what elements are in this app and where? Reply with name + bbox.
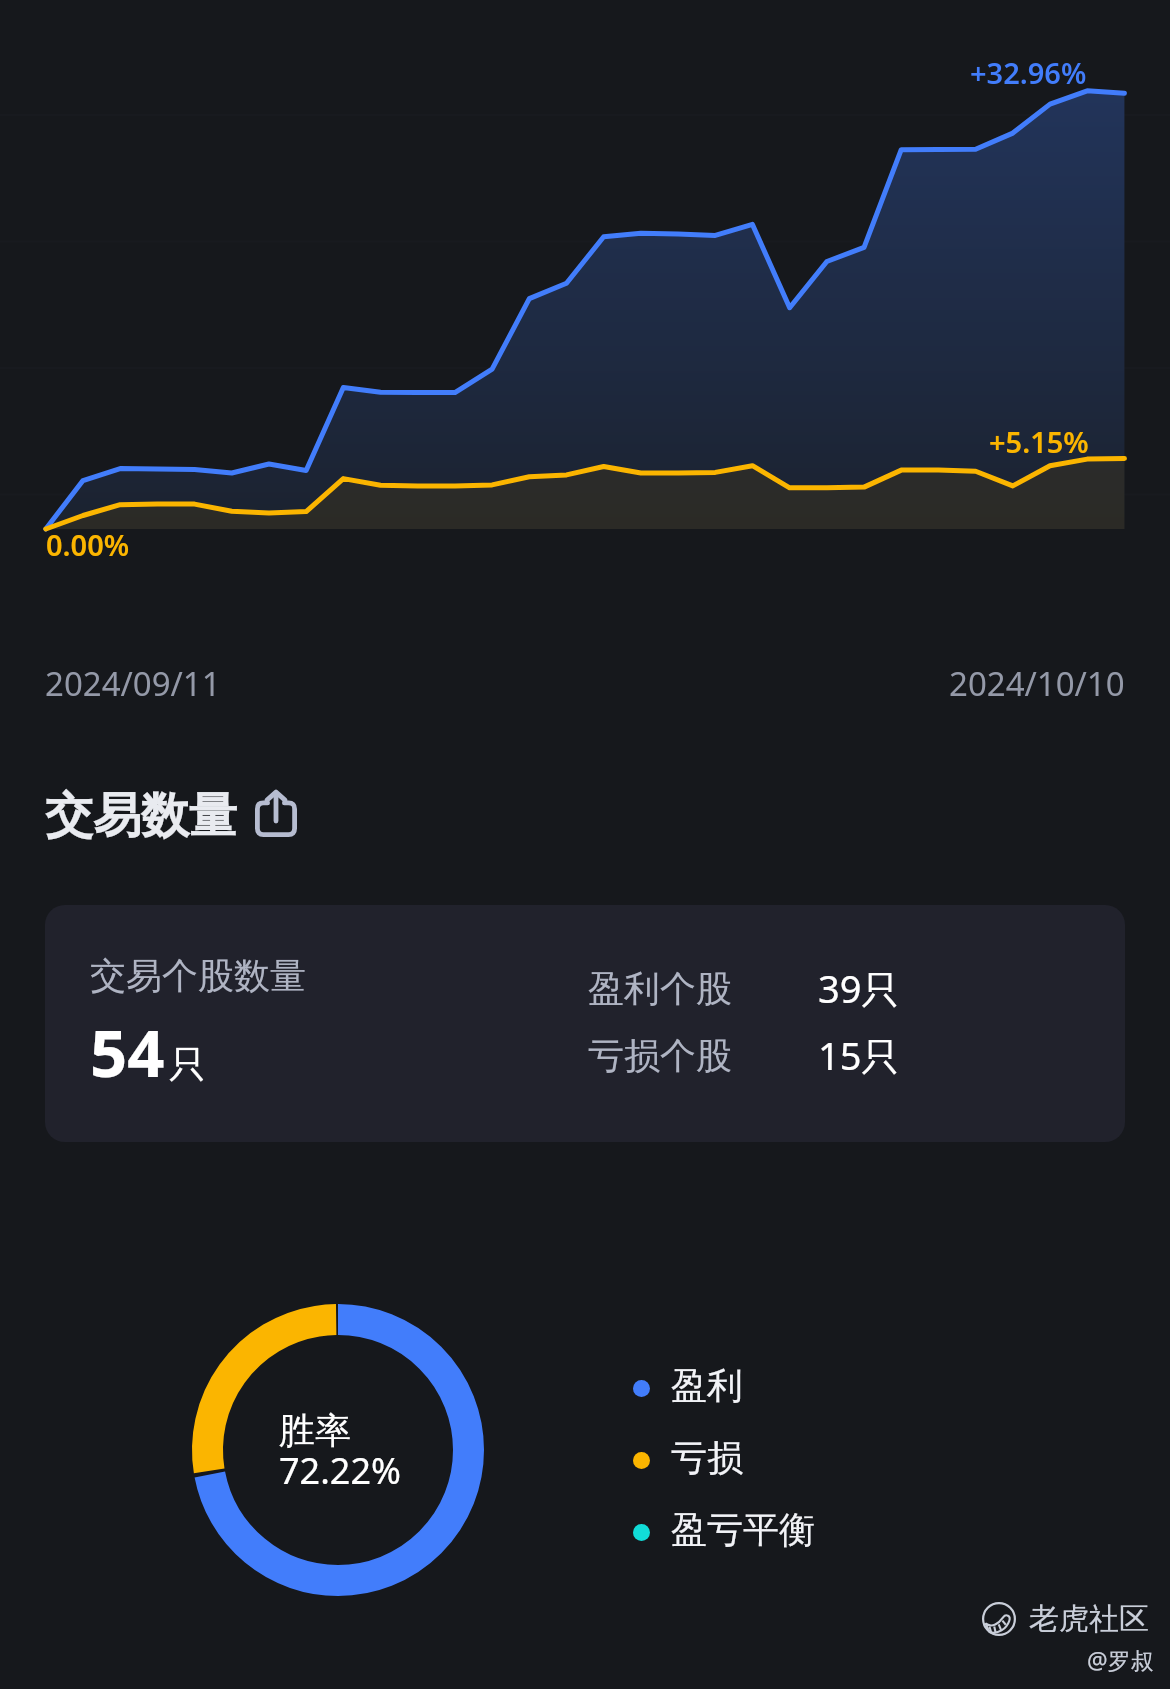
staticText: 交易数量 [45,786,237,846]
staticText: 39只 [818,962,900,1014]
button[interactable]: 交易个股数量 [45,905,1125,1142]
staticText: 72.22% [279,1446,401,1495]
staticText: 2024/10/10 [949,661,1125,706]
staticText: 亏损个股 [588,1033,818,1078]
staticText: 0.00% [46,525,130,564]
staticText: 54 [90,1008,165,1097]
button[interactable]: 亏损 [633,1424,743,1496]
staticText: @罗叔 [1087,1644,1154,1675]
staticText: +5.15% [989,422,1089,461]
button[interactable]: Share [253,789,299,837]
staticText: 盈亏平衡 [671,1507,815,1552]
staticText: 老虎社区 [1029,1600,1149,1638]
button[interactable]: 盈利 [633,1352,743,1424]
staticText: 15只 [818,1029,900,1081]
staticText: 胜率 [279,1408,351,1453]
staticText: 交易个股数量 [90,953,306,998]
staticText: 2024/09/11 [45,661,221,706]
staticText: 盈利个股 [588,966,818,1011]
staticText: 亏损 [671,1435,743,1480]
staticText: 只 [169,1041,206,1088]
button[interactable]: 盈亏平衡 [633,1496,815,1568]
staticText: +32.96% [970,53,1087,92]
staticText: 盈利 [671,1363,743,1408]
